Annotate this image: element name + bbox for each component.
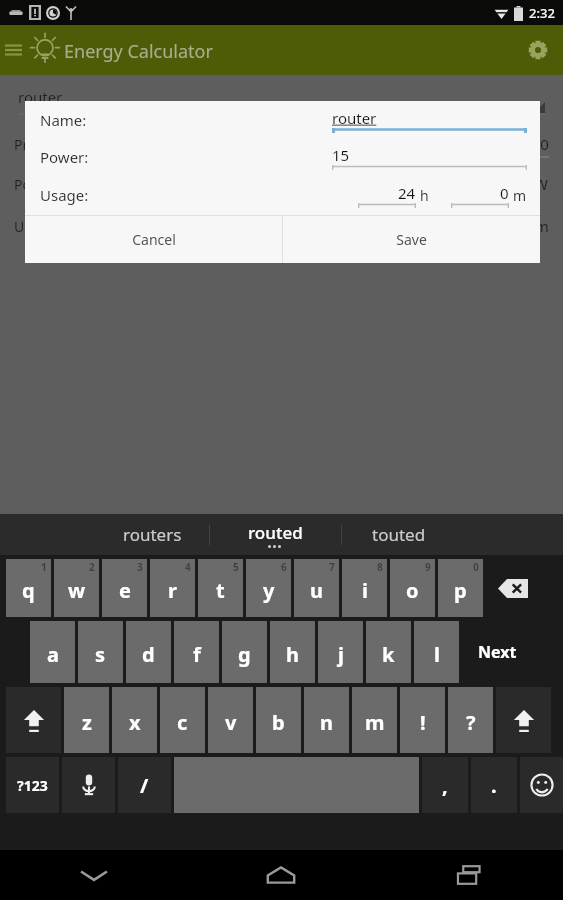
button[interactable]: e — [102, 559, 147, 617]
button[interactable]: o — [390, 559, 435, 617]
button[interactable]: l — [414, 621, 459, 683]
staticText: 15 W — [513, 174, 549, 194]
staticText: h — [420, 186, 429, 205]
staticText: Power: — [14, 175, 60, 194]
staticText: Next — [478, 641, 517, 663]
button[interactable]: ?123 — [6, 757, 59, 813]
button[interactable]: i — [342, 559, 387, 617]
button[interactable]: r — [150, 559, 195, 617]
staticText: Save — [396, 230, 427, 249]
button[interactable]: k — [366, 621, 411, 683]
staticText: g — [238, 641, 251, 668]
staticText: l — [434, 641, 440, 668]
button[interactable]: f — [174, 621, 219, 683]
button[interactable]: Recent apps — [375, 850, 563, 900]
staticText: f — [193, 641, 201, 668]
staticText: q — [22, 577, 35, 604]
button[interactable]: h — [270, 621, 315, 683]
button[interactable]: m — [352, 687, 397, 753]
button[interactable]: u — [294, 559, 339, 617]
button[interactable]: ! — [400, 687, 445, 753]
button[interactable]: q — [6, 559, 51, 617]
staticText: 0 — [500, 183, 509, 203]
button[interactable]: ? — [448, 687, 493, 753]
staticText: b — [272, 709, 285, 736]
staticText: 9 — [425, 560, 431, 574]
staticText: 4 — [185, 560, 191, 574]
button[interactable]: x — [112, 687, 157, 753]
staticText: 24 h 0 m — [488, 216, 549, 236]
button[interactable]: v — [208, 687, 253, 753]
button[interactable]: Shift — [496, 687, 551, 753]
button[interactable]: touted — [342, 514, 455, 555]
staticText: touted — [372, 523, 426, 546]
button[interactable]: Settings — [513, 25, 563, 75]
button[interactable]: Open navigation menu — [0, 25, 26, 75]
staticText: / — [140, 772, 149, 799]
button[interactable]: b — [256, 687, 301, 753]
button[interactable]: Home — [187, 850, 375, 900]
staticText: Usage: — [14, 217, 60, 236]
staticText: 6 — [281, 560, 287, 574]
staticText: ! — [420, 709, 426, 736]
staticText: 2 — [89, 560, 95, 574]
staticText: 3 — [137, 560, 143, 574]
button[interactable]: / — [118, 757, 171, 813]
staticText: d — [142, 641, 155, 668]
staticText: s — [95, 641, 106, 668]
staticText: Name: — [40, 110, 87, 130]
button[interactable]: c — [160, 687, 205, 753]
staticText: y — [263, 577, 275, 604]
staticText: 15 — [332, 145, 350, 165]
button[interactable]: t — [198, 559, 243, 617]
staticText: i — [362, 577, 368, 604]
staticText: routers — [123, 523, 182, 546]
button[interactable]: Emoji — [520, 757, 563, 813]
button[interactable]: y — [246, 559, 291, 617]
staticText: c — [177, 709, 188, 736]
button[interactable]: router — [18, 83, 545, 117]
button[interactable]: j — [318, 621, 363, 683]
staticText: Energy Calculator — [64, 39, 213, 64]
button[interactable]: , — [422, 757, 468, 813]
button[interactable]: . — [471, 757, 517, 813]
button[interactable]: Shift — [6, 687, 61, 753]
staticText: u — [310, 577, 323, 604]
staticText: h — [286, 641, 299, 668]
button[interactable]: Backspace — [486, 559, 540, 617]
staticText: 0.20 — [519, 134, 549, 154]
button[interactable]: d — [126, 621, 171, 683]
staticText: Cancel — [132, 230, 176, 249]
button[interactable]: Next — [462, 621, 532, 683]
button[interactable]: routed — [210, 514, 341, 555]
button[interactable]: Save — [283, 216, 540, 263]
button[interactable]: Cancel — [25, 216, 282, 263]
button[interactable]: w — [54, 559, 99, 617]
staticText: m — [513, 186, 527, 205]
staticText: router — [18, 87, 63, 107]
button[interactable]: a — [30, 621, 75, 683]
staticText: Usage: — [40, 185, 89, 205]
staticText: 8 — [377, 560, 383, 574]
staticText: n — [320, 709, 333, 736]
button[interactable]: Hide keyboard — [0, 850, 187, 900]
staticText: x — [129, 709, 141, 736]
staticText: 0 — [473, 560, 479, 574]
staticText: o — [406, 577, 419, 604]
staticText: v — [225, 709, 237, 736]
staticText: w — [68, 577, 86, 604]
button[interactable]: Voice input — [62, 757, 115, 813]
button[interactable]: s — [78, 621, 123, 683]
button[interactable]: p — [438, 559, 483, 617]
button[interactable]: routers — [96, 514, 209, 555]
button[interactable]: z — [64, 687, 109, 753]
staticText: e — [119, 577, 131, 604]
button[interactable]: g — [222, 621, 267, 683]
staticText: m — [365, 709, 385, 736]
staticText: router — [332, 108, 377, 128]
staticText: 24 — [398, 183, 416, 203]
staticText: j — [338, 641, 344, 668]
button[interactable]: n — [304, 687, 349, 753]
staticText: , — [442, 772, 448, 799]
